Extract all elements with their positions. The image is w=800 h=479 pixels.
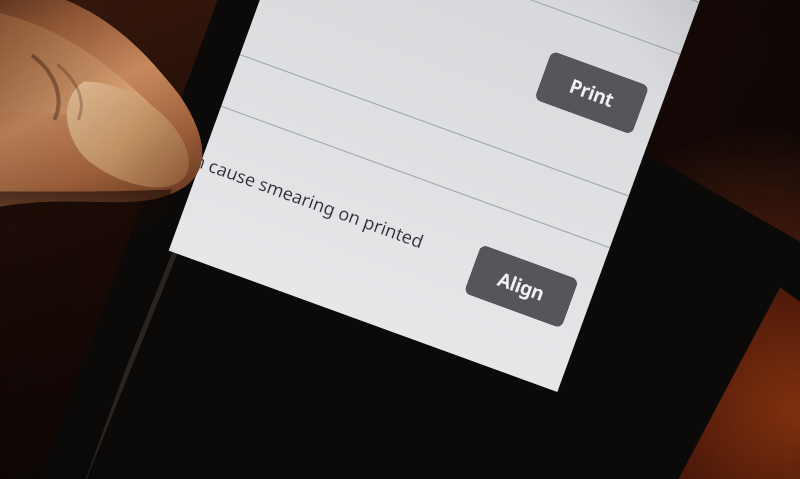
button[interactable]: Optimize and Improve xyxy=(0,0,699,54)
button[interactable]: Align Printhead xyxy=(0,0,680,196)
staticText: Print xyxy=(566,73,618,113)
button[interactable]: Clean Smear xyxy=(0,0,610,392)
button[interactable]: Clean Up xyxy=(0,0,628,247)
button[interactable]: Print xyxy=(534,50,649,135)
staticText: Clean Smear xyxy=(0,10,36,82)
staticText: Align xyxy=(494,266,548,307)
button[interactable]: Align xyxy=(463,244,579,328)
staticText: Remove buildup in the printer that can c… xyxy=(0,40,466,290)
staticText: Start printhead alignment and print test… xyxy=(0,0,339,3)
